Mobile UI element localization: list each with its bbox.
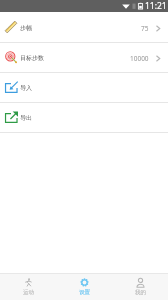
staticText: 步幅 xyxy=(20,24,32,32)
staticText: 运动 xyxy=(23,289,34,296)
button[interactable]: 导出 xyxy=(0,103,168,133)
staticText: 我的 xyxy=(135,289,146,296)
button[interactable]: 步幅 xyxy=(0,13,168,43)
staticText: 导出 xyxy=(20,114,32,122)
button[interactable]: Settings xyxy=(56,274,112,300)
button[interactable]: Profile xyxy=(112,274,168,300)
staticText: 75 xyxy=(141,24,149,33)
staticText: 10000 xyxy=(130,54,149,63)
staticText: 导入 xyxy=(20,84,32,92)
staticText: 设置 xyxy=(79,289,90,296)
staticText: 目标步数 xyxy=(20,54,44,62)
staticText: 11:21 xyxy=(145,0,167,12)
button[interactable]: 导入 xyxy=(0,73,168,103)
button[interactable]: 目标步数 xyxy=(0,43,168,73)
button[interactable]: Exercise xyxy=(0,274,56,300)
